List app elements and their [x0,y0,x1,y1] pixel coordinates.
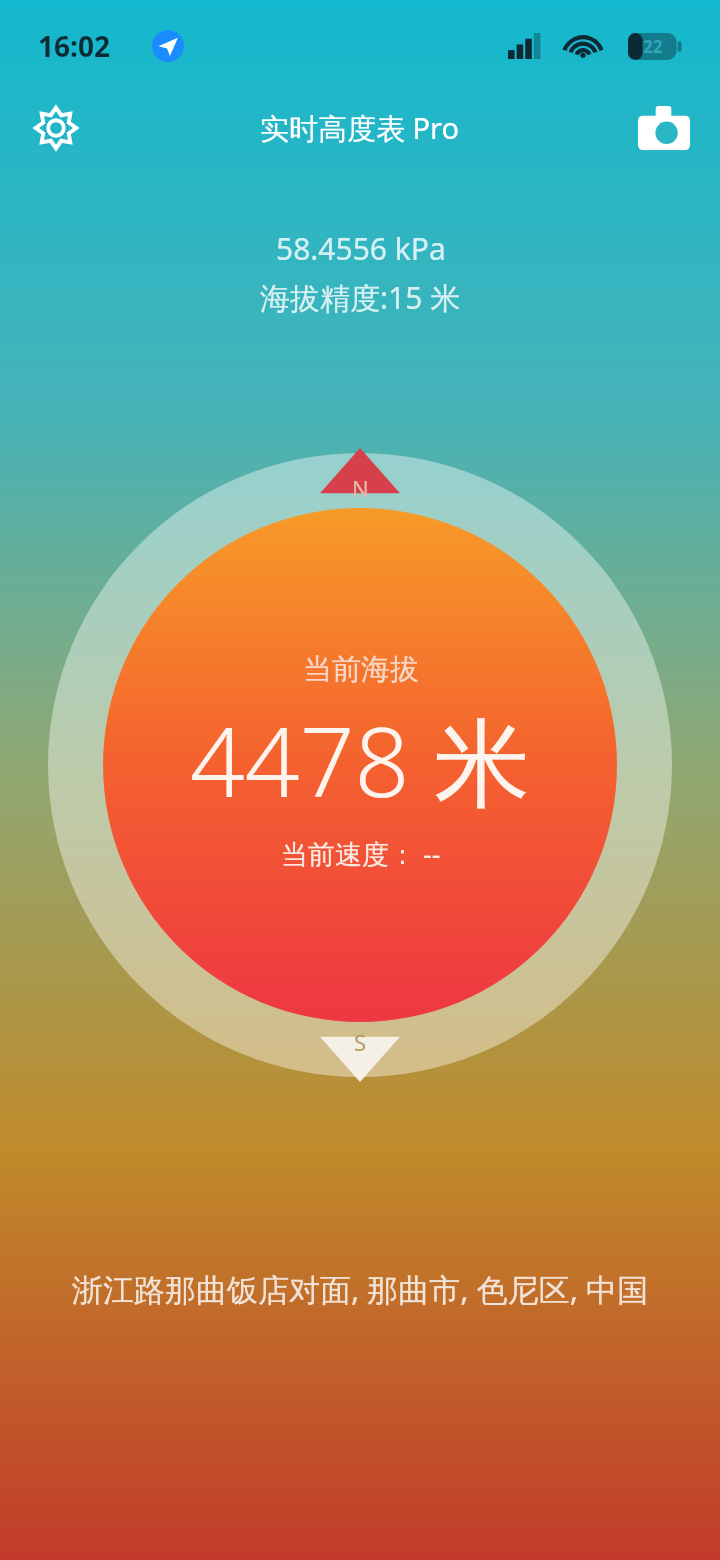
button[interactable]: Camera [632,96,696,160]
staticText: 实时高度表 Pro [260,108,460,148]
staticText: S [354,1027,367,1057]
button[interactable]: 浙江路那曲饭店对面, 那曲市, 色尼区, 中国 [60,1268,660,1310]
staticText: 4478 米 [190,694,531,825]
staticText: N [352,473,369,503]
staticText: 当前海拔 [303,651,419,688]
button[interactable]: Settings [24,96,88,160]
staticText: 16:02 [38,27,110,65]
staticText: 当前速度： -- [281,835,441,872]
staticText: 58.4556 kPa [276,228,446,269]
staticText: 22 [643,35,663,58]
staticText: 海拔精度:15 米 [260,277,461,318]
